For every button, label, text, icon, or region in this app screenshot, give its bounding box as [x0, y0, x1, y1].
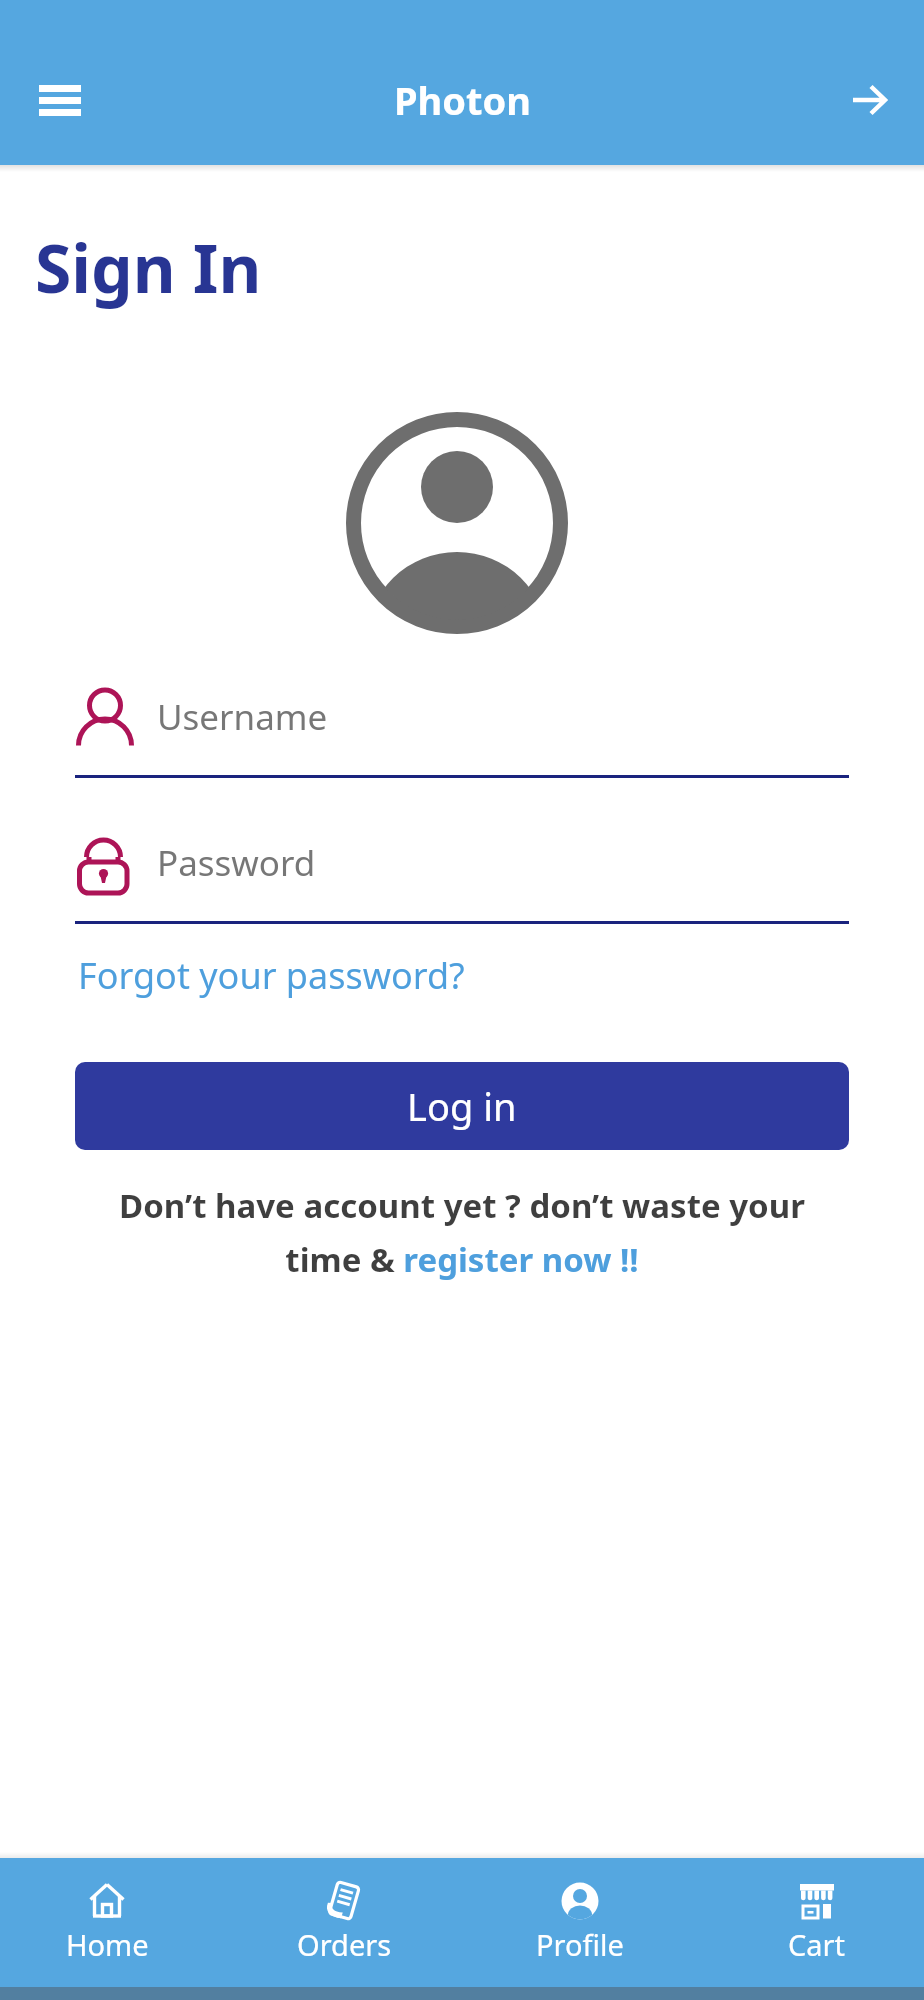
- button[interactable]: Home: [27, 1858, 187, 1987]
- button[interactable]: [75, 689, 849, 778]
- button[interactable]: Log in: [75, 1062, 849, 1150]
- staticText: Cart: [788, 1925, 846, 1964]
- staticText: Username: [157, 693, 328, 741]
- button[interactable]: Orders: [264, 1858, 424, 1987]
- button[interactable]: Don’t have account yet ? don’t waste you…: [119, 1183, 805, 1282]
- button[interactable]: Forgot your password?: [78, 951, 465, 1000]
- staticText: Password: [157, 839, 316, 887]
- button[interactable]: Cart: [737, 1858, 897, 1987]
- staticText: Orders: [297, 1925, 392, 1964]
- button[interactable]: [838, 68, 902, 132]
- button[interactable]: Profile: [500, 1858, 660, 1987]
- button[interactable]: [28, 68, 92, 132]
- staticText: Log in: [407, 1080, 517, 1132]
- button[interactable]: [75, 835, 849, 924]
- staticText: Home: [66, 1925, 149, 1964]
- staticText: Photon: [394, 74, 531, 126]
- staticText: Profile: [536, 1925, 624, 1964]
- staticText: Sign In: [35, 222, 262, 312]
